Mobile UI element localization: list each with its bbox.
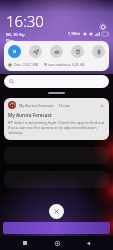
staticText: My Aurora Forecast xyxy=(8,112,52,118)
button[interactable]: Settings xyxy=(98,22,108,32)
staticText: W tym miesiacu: 4,05 GB xyxy=(44,62,85,67)
button[interactable]: Quick setting xyxy=(92,45,105,58)
button[interactable]: Search xyxy=(4,75,109,88)
button[interactable]: Notification xyxy=(4,147,109,164)
button[interactable]: Expand notifications xyxy=(48,92,65,94)
button[interactable]: Back xyxy=(82,237,94,249)
staticText: 16:30 xyxy=(6,11,44,31)
button[interactable]: Quick setting xyxy=(71,45,84,58)
button[interactable]: My Aurora Forecast xyxy=(4,98,109,140)
staticText: 7,1Kb/s xyxy=(68,31,81,36)
button[interactable]: Clear all notifications xyxy=(49,204,64,219)
staticText: KP index is becoming high. Check the app… xyxy=(8,120,105,135)
button[interactable]: Recents xyxy=(19,237,31,249)
staticText: Play xyxy=(6,38,14,43)
button[interactable]: Pause data xyxy=(8,45,21,58)
button[interactable]: Collapse xyxy=(98,102,105,109)
staticText: Dzis: 234,7 MB xyxy=(14,62,38,67)
button[interactable]: Home xyxy=(51,237,63,249)
button[interactable]: Quick setting xyxy=(50,45,63,58)
staticText: Wt, 20 Sty xyxy=(6,32,25,37)
staticText: My Aurora Forecast xyxy=(19,103,54,108)
button[interactable]: Quick setting xyxy=(29,45,42,58)
button[interactable]: Notification xyxy=(4,171,109,188)
staticText: · 13 min xyxy=(56,103,71,108)
